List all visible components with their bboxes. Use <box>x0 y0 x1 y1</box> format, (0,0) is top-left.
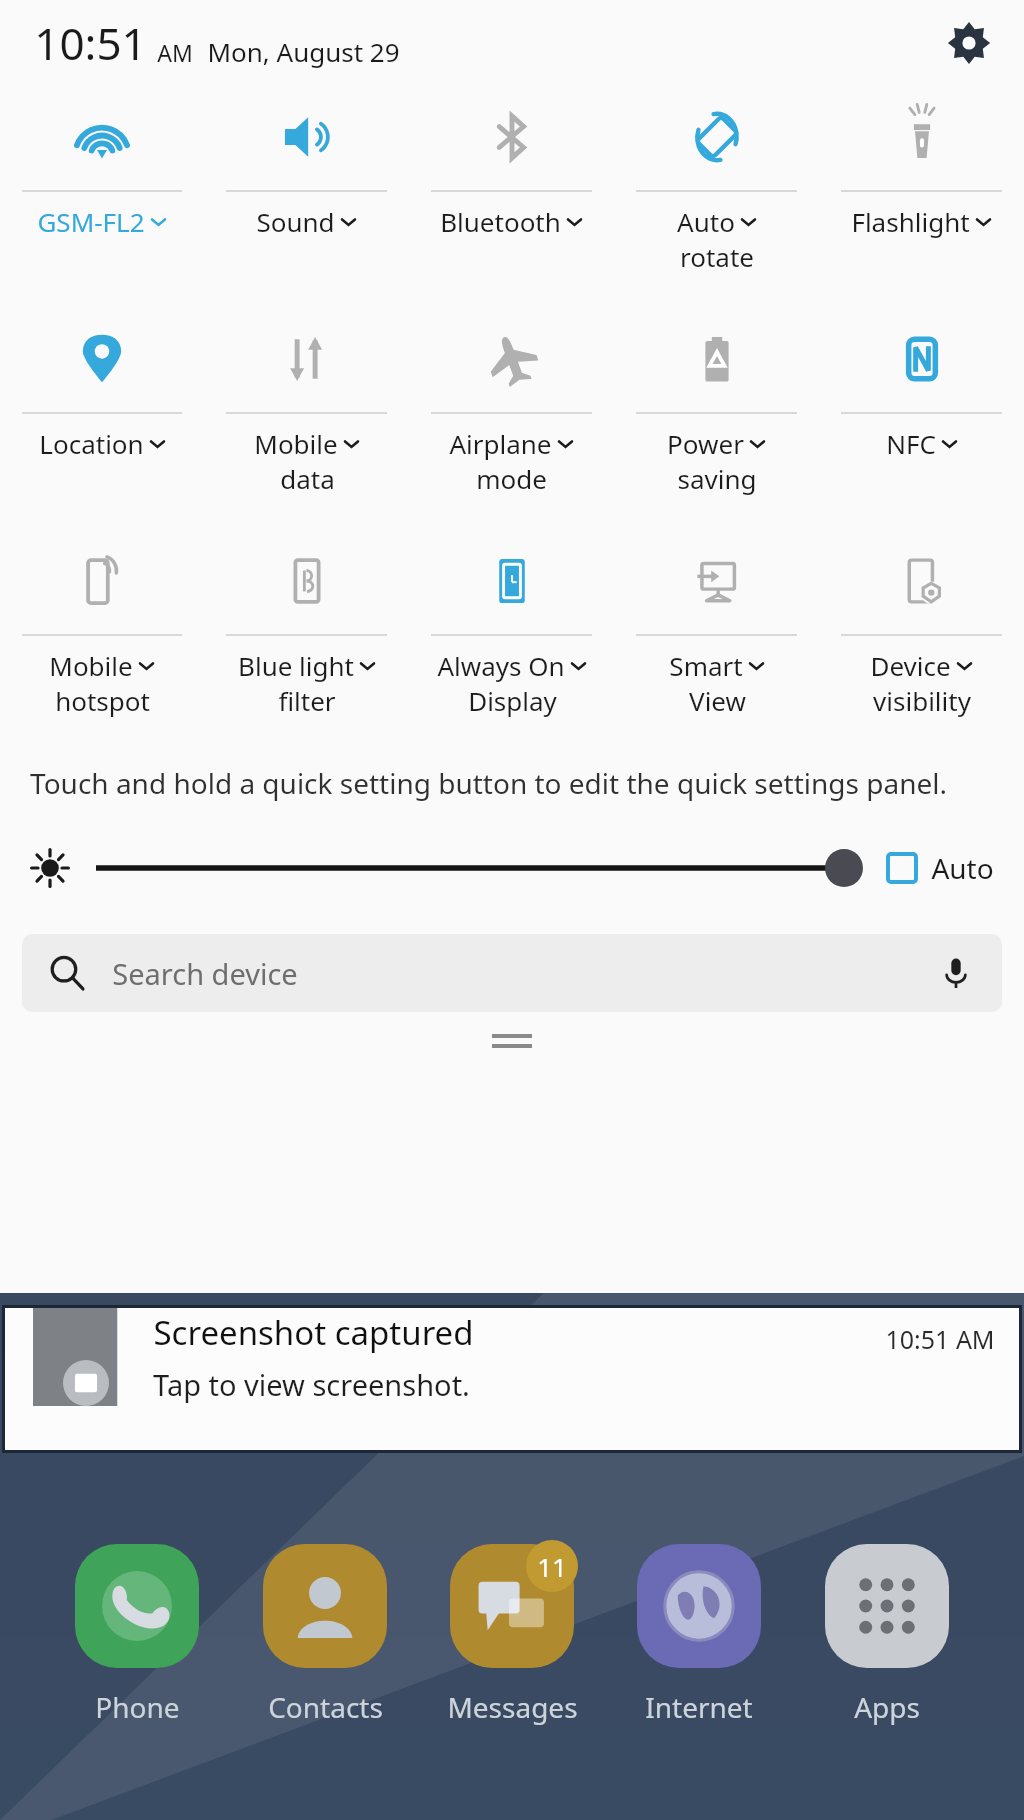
button[interactable]: Location <box>0 322 204 461</box>
staticText: mode <box>476 461 547 496</box>
staticText: AM <box>157 37 193 68</box>
staticText: Always On <box>437 648 565 683</box>
button[interactable]: Brightness <box>96 842 863 894</box>
staticText: Smart <box>669 648 743 683</box>
button[interactable]: NFC <box>819 322 1024 461</box>
button[interactable]: Smart <box>614 544 819 718</box>
staticText: Phone <box>95 1688 180 1726</box>
staticText: hotspot <box>55 683 150 718</box>
button[interactable]: Auto <box>885 849 994 887</box>
button[interactable]: Airplane <box>409 322 614 496</box>
button[interactable]: Sound <box>204 100 409 239</box>
staticText: Sound <box>256 204 335 239</box>
staticText: Display <box>468 683 557 718</box>
staticText: 10:51 <box>34 13 147 73</box>
staticText: 11 <box>537 1549 567 1584</box>
button[interactable]: Always On <box>409 544 614 718</box>
staticText: Mobile <box>49 648 133 683</box>
staticText: Touch and hold a quick setting button to… <box>30 764 947 802</box>
staticText: Device <box>870 648 951 683</box>
staticText: Power <box>667 426 744 461</box>
staticText: Mon, August 29 <box>207 34 400 69</box>
staticText: visibility <box>873 683 971 718</box>
staticText: Airplane <box>449 426 552 461</box>
staticText: Contacts <box>268 1688 383 1726</box>
button[interactable]: 11 <box>446 1540 578 1726</box>
button[interactable]: Device <box>819 544 1024 718</box>
button[interactable]: Flashlight <box>819 100 1024 239</box>
staticText: Bluetooth <box>440 204 561 239</box>
staticText: Blue light <box>238 648 354 683</box>
staticText: NFC <box>886 426 936 461</box>
staticText: rotate <box>680 239 754 274</box>
staticText: Internet <box>645 1688 753 1726</box>
staticText: Screenshot captured <box>153 1310 474 1355</box>
staticText: Apps <box>854 1688 920 1726</box>
staticText: 10:51 AM <box>885 1322 995 1356</box>
staticText: Search device <box>112 954 298 993</box>
staticText: Auto <box>677 204 735 239</box>
button[interactable]: Mobile <box>204 322 409 496</box>
button[interactable]: Apps <box>821 1540 953 1726</box>
staticText: Messages <box>447 1688 578 1726</box>
staticText: Tap to view screenshot. <box>153 1365 470 1404</box>
staticText: Auto <box>931 849 994 887</box>
staticText: Location <box>39 426 144 461</box>
button[interactable]: Mobile <box>0 544 204 718</box>
button[interactable]: Bluetooth <box>409 100 614 239</box>
staticText: GSM-FL2 <box>37 204 145 239</box>
staticText: Mobile <box>254 426 338 461</box>
staticText: filter <box>278 683 336 718</box>
staticText: View <box>689 683 746 718</box>
button[interactable]: Search device <box>22 934 1002 1012</box>
button[interactable]: Screenshot captured <box>5 1308 1019 1450</box>
button[interactable]: Settings <box>936 10 1002 76</box>
button[interactable]: Auto <box>614 100 819 274</box>
button[interactable]: GSM-FL2 <box>0 100 204 239</box>
button[interactable]: Voice search <box>936 953 976 993</box>
staticText: data <box>280 461 335 496</box>
staticText: Flashlight <box>851 204 970 239</box>
button[interactable]: Power <box>614 322 819 496</box>
button[interactable]: Internet <box>633 1540 765 1726</box>
button[interactable]: Blue light <box>204 544 409 718</box>
button[interactable]: Phone <box>71 1540 203 1726</box>
staticText: saving <box>677 461 757 496</box>
button[interactable]: Contacts <box>259 1540 391 1726</box>
